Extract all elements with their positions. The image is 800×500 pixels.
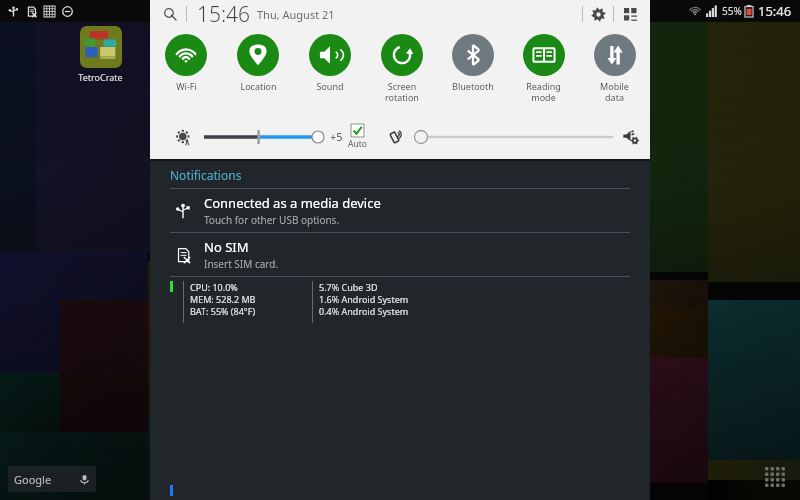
- button[interactable]: Location: [222, 28, 294, 114]
- staticText: Auto: [348, 138, 367, 150]
- staticText: BAT: 55% (84°F): [190, 305, 256, 317]
- button[interactable]: Mobile data: [579, 28, 650, 114]
- button[interactable]: Wi-Fi: [150, 28, 222, 114]
- button[interactable]: Auto brightness: [172, 126, 194, 148]
- staticText: No SIM: [204, 238, 249, 256]
- button[interactable]: Edit quick settings: [614, 0, 646, 28]
- staticText: Wi-Fi: [176, 80, 197, 92]
- button[interactable]: No SIM: [150, 233, 650, 276]
- button[interactable]: TetroCrate: [70, 26, 130, 83]
- staticText: Sound: [316, 80, 344, 92]
- staticText: CPU: 10.0%: [190, 281, 238, 293]
- staticText: Thu, August 21: [257, 7, 335, 22]
- staticText: Screen rotation: [385, 80, 419, 103]
- button[interactable]: Connected as a media device: [150, 189, 650, 232]
- staticText: Google: [14, 472, 52, 487]
- button[interactable]: Bluetooth: [437, 28, 508, 114]
- staticText: Touch for other USB options.: [204, 213, 340, 227]
- staticText: 0.4% Android System: [319, 305, 409, 317]
- button[interactable]: Sound: [294, 28, 366, 114]
- button[interactable]: Brightness: [204, 122, 324, 152]
- staticText: Bluetooth: [452, 80, 494, 92]
- button[interactable]: Reading mode: [508, 28, 579, 114]
- staticText: 55%: [722, 4, 742, 18]
- staticText: Location: [240, 80, 277, 92]
- staticText: 1.6% Android System: [319, 293, 409, 305]
- button[interactable]: Volume: [413, 122, 614, 152]
- button[interactable]: Auto: [348, 123, 367, 150]
- button[interactable]: Google: [8, 466, 96, 492]
- button[interactable]: Vibrate: [385, 127, 405, 147]
- button[interactable]: Sound settings: [620, 126, 642, 148]
- staticText: Insert SIM card.: [204, 257, 279, 271]
- button[interactable]: Apps: [760, 462, 790, 492]
- staticText: Notifications: [170, 167, 242, 183]
- staticText: MEM: 528.2 MB: [190, 293, 256, 305]
- button[interactable]: Search: [160, 4, 180, 24]
- staticText: +5: [330, 129, 343, 144]
- staticText: Mobile data: [600, 80, 629, 103]
- staticText: 5.7% Cube 3D: [319, 281, 378, 293]
- staticText: 15:46: [758, 2, 792, 20]
- staticText: 15:46: [197, 0, 251, 28]
- staticText: Connected as a media device: [204, 194, 381, 212]
- button[interactable]: Settings: [583, 0, 613, 28]
- staticText: TetroCrate: [78, 71, 123, 83]
- button[interactable]: Screen rotation: [366, 28, 437, 114]
- staticText: Reading mode: [526, 80, 561, 103]
